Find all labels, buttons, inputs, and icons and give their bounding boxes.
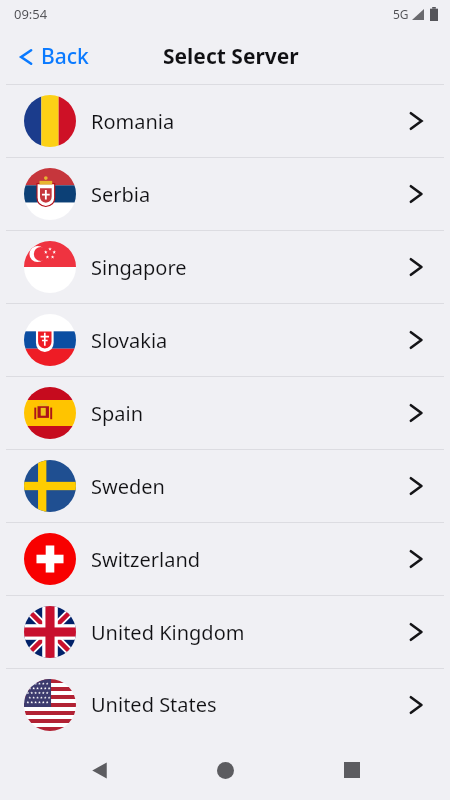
button[interactable]: Serbia <box>0 158 450 230</box>
other: Open United Kingdom <box>408 619 424 645</box>
staticText: 5G <box>393 6 409 22</box>
staticText: United States <box>91 691 408 718</box>
staticText: Singapore <box>91 254 408 281</box>
button[interactable]: Sweden <box>0 450 450 522</box>
button[interactable]: Romania <box>0 85 450 157</box>
staticText: Switzerland <box>91 546 408 573</box>
staticText: Select Server <box>163 42 299 71</box>
staticText: Serbia <box>91 181 408 208</box>
other: Open Switzerland <box>408 546 424 572</box>
button[interactable]: Home <box>197 742 253 798</box>
button[interactable]: Singapore <box>0 231 450 303</box>
staticText: Sweden <box>91 473 408 500</box>
other: Open United States <box>408 692 424 718</box>
staticText: United Kingdom <box>91 619 408 646</box>
button[interactable]: Back <box>71 742 127 798</box>
button[interactable]: United Kingdom <box>0 596 450 668</box>
other: Open Spain <box>408 400 424 426</box>
other: Open Serbia <box>408 181 424 207</box>
staticText: Spain <box>91 400 408 427</box>
button[interactable]: Spain <box>0 377 450 449</box>
staticText: 09:54 <box>14 5 48 23</box>
staticText: Back <box>41 42 89 71</box>
button[interactable]: Slovakia <box>0 304 450 376</box>
other: Open Romania <box>408 108 424 134</box>
staticText: Slovakia <box>91 327 408 354</box>
button[interactable]: Back <box>14 36 93 77</box>
button[interactable]: United States <box>0 669 450 740</box>
button[interactable]: Recent apps <box>324 742 380 798</box>
other: Open Slovakia <box>408 327 424 353</box>
button[interactable]: Switzerland <box>0 523 450 595</box>
other: Open Singapore <box>408 254 424 280</box>
other: Open Sweden <box>408 473 424 499</box>
staticText: Romania <box>91 108 408 135</box>
